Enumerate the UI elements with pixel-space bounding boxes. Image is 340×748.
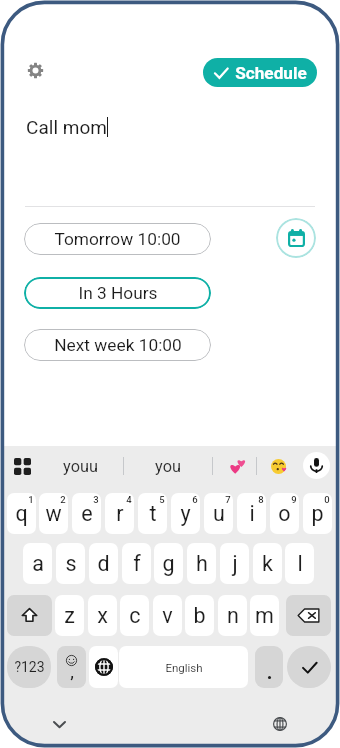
staticText: 2 [60,494,66,505]
staticText: c [129,603,141,628]
button[interactable]: m [250,595,279,636]
button[interactable]: x [88,595,117,636]
button[interactable]: e [72,493,101,534]
staticText: x [97,603,108,628]
staticText: q [15,501,28,526]
button[interactable]: Toolbar [12,457,32,476]
staticText: m [255,603,274,628]
button[interactable]: i [237,493,266,534]
staticText: Tomorrow 10:00 [54,229,181,249]
button[interactable] [268,456,288,476]
staticText: u [213,501,225,526]
staticText: , [70,664,74,682]
button[interactable]: Change language [272,716,288,732]
staticText: n [227,603,239,628]
button[interactable]: Settings [24,59,46,81]
button[interactable]: v [153,595,182,636]
staticText: ?123 [14,659,45,675]
staticText: h [196,551,208,576]
button[interactable]: Tomorrow 10:00 [24,223,211,255]
button[interactable]: Language [89,646,118,688]
button[interactable]: p [303,493,332,534]
button[interactable]: c [120,595,149,636]
staticText: e [81,501,93,526]
button[interactable]: In 3 Hours [24,277,211,309]
staticText: d [97,551,110,576]
staticText: English [165,661,203,674]
staticText: a [32,551,44,576]
button[interactable]: z [55,595,84,636]
button[interactable]: q [7,493,36,534]
button[interactable]: d [89,543,118,584]
staticText: i [249,501,255,526]
button[interactable]: Next week 10:00 [24,329,211,361]
button[interactable]: English [119,646,248,688]
staticText: y [180,501,191,526]
staticText: 6 [192,494,198,505]
staticText: 8 [258,494,264,505]
staticText: t [149,501,157,526]
button[interactable]: Hide keyboard [48,713,70,735]
button[interactable]: Enter [287,646,331,688]
button[interactable]: f [122,543,151,584]
staticText: Schedule [235,63,307,83]
button[interactable]: l [285,543,314,584]
button[interactable]: Shift [7,595,52,636]
staticText: g [162,551,175,576]
button[interactable]: u [204,493,233,534]
staticText: 3 [93,494,99,505]
button[interactable]: r [105,493,134,534]
staticText: 7 [225,494,231,505]
staticText: w [45,501,62,526]
button[interactable]: Schedule [203,58,317,87]
staticText: 5 [159,494,165,505]
staticText: youu [63,457,98,476]
staticText: v [162,603,173,628]
button[interactable]: you [136,447,200,485]
staticText: Next week 10:00 [54,335,182,355]
button[interactable]: k [253,543,282,584]
staticText: r [116,501,124,526]
staticText: In 3 Hours [78,283,158,303]
button[interactable]: ?123 [7,646,51,688]
button[interactable]: w [39,493,68,534]
button[interactable]: g [154,543,183,584]
button[interactable]: Voice input [303,452,330,479]
staticText: l [297,551,303,576]
button[interactable]: Period [255,646,283,688]
staticText: k [262,551,273,576]
staticText: 1 [28,494,34,505]
button[interactable]: n [218,595,247,636]
staticText: 0 [324,494,330,505]
button[interactable]: s [56,543,85,584]
button[interactable]: Pick date and time [276,218,316,258]
staticText: you [155,457,181,476]
staticText: p [311,501,324,526]
button[interactable] [227,456,247,476]
button[interactable]: y [171,493,200,534]
button[interactable]: o [270,493,299,534]
button[interactable]: youu [40,447,120,485]
staticText: o [278,501,291,526]
button[interactable]: Backspace [286,595,331,636]
staticText: 4 [126,494,132,505]
staticText: z [64,603,75,628]
button[interactable]: b [185,595,214,636]
button[interactable]: j [220,543,249,584]
button[interactable]: t [138,493,167,534]
staticText: 9 [291,494,297,505]
staticText: f [133,551,141,576]
button[interactable]: a [23,543,52,584]
staticText: s [65,551,77,576]
staticText: b [193,603,206,628]
staticText: Call mom [26,116,107,138]
staticText: j [232,551,238,576]
button[interactable]: h [187,543,216,584]
button[interactable]: Emoji and comma [57,646,86,688]
